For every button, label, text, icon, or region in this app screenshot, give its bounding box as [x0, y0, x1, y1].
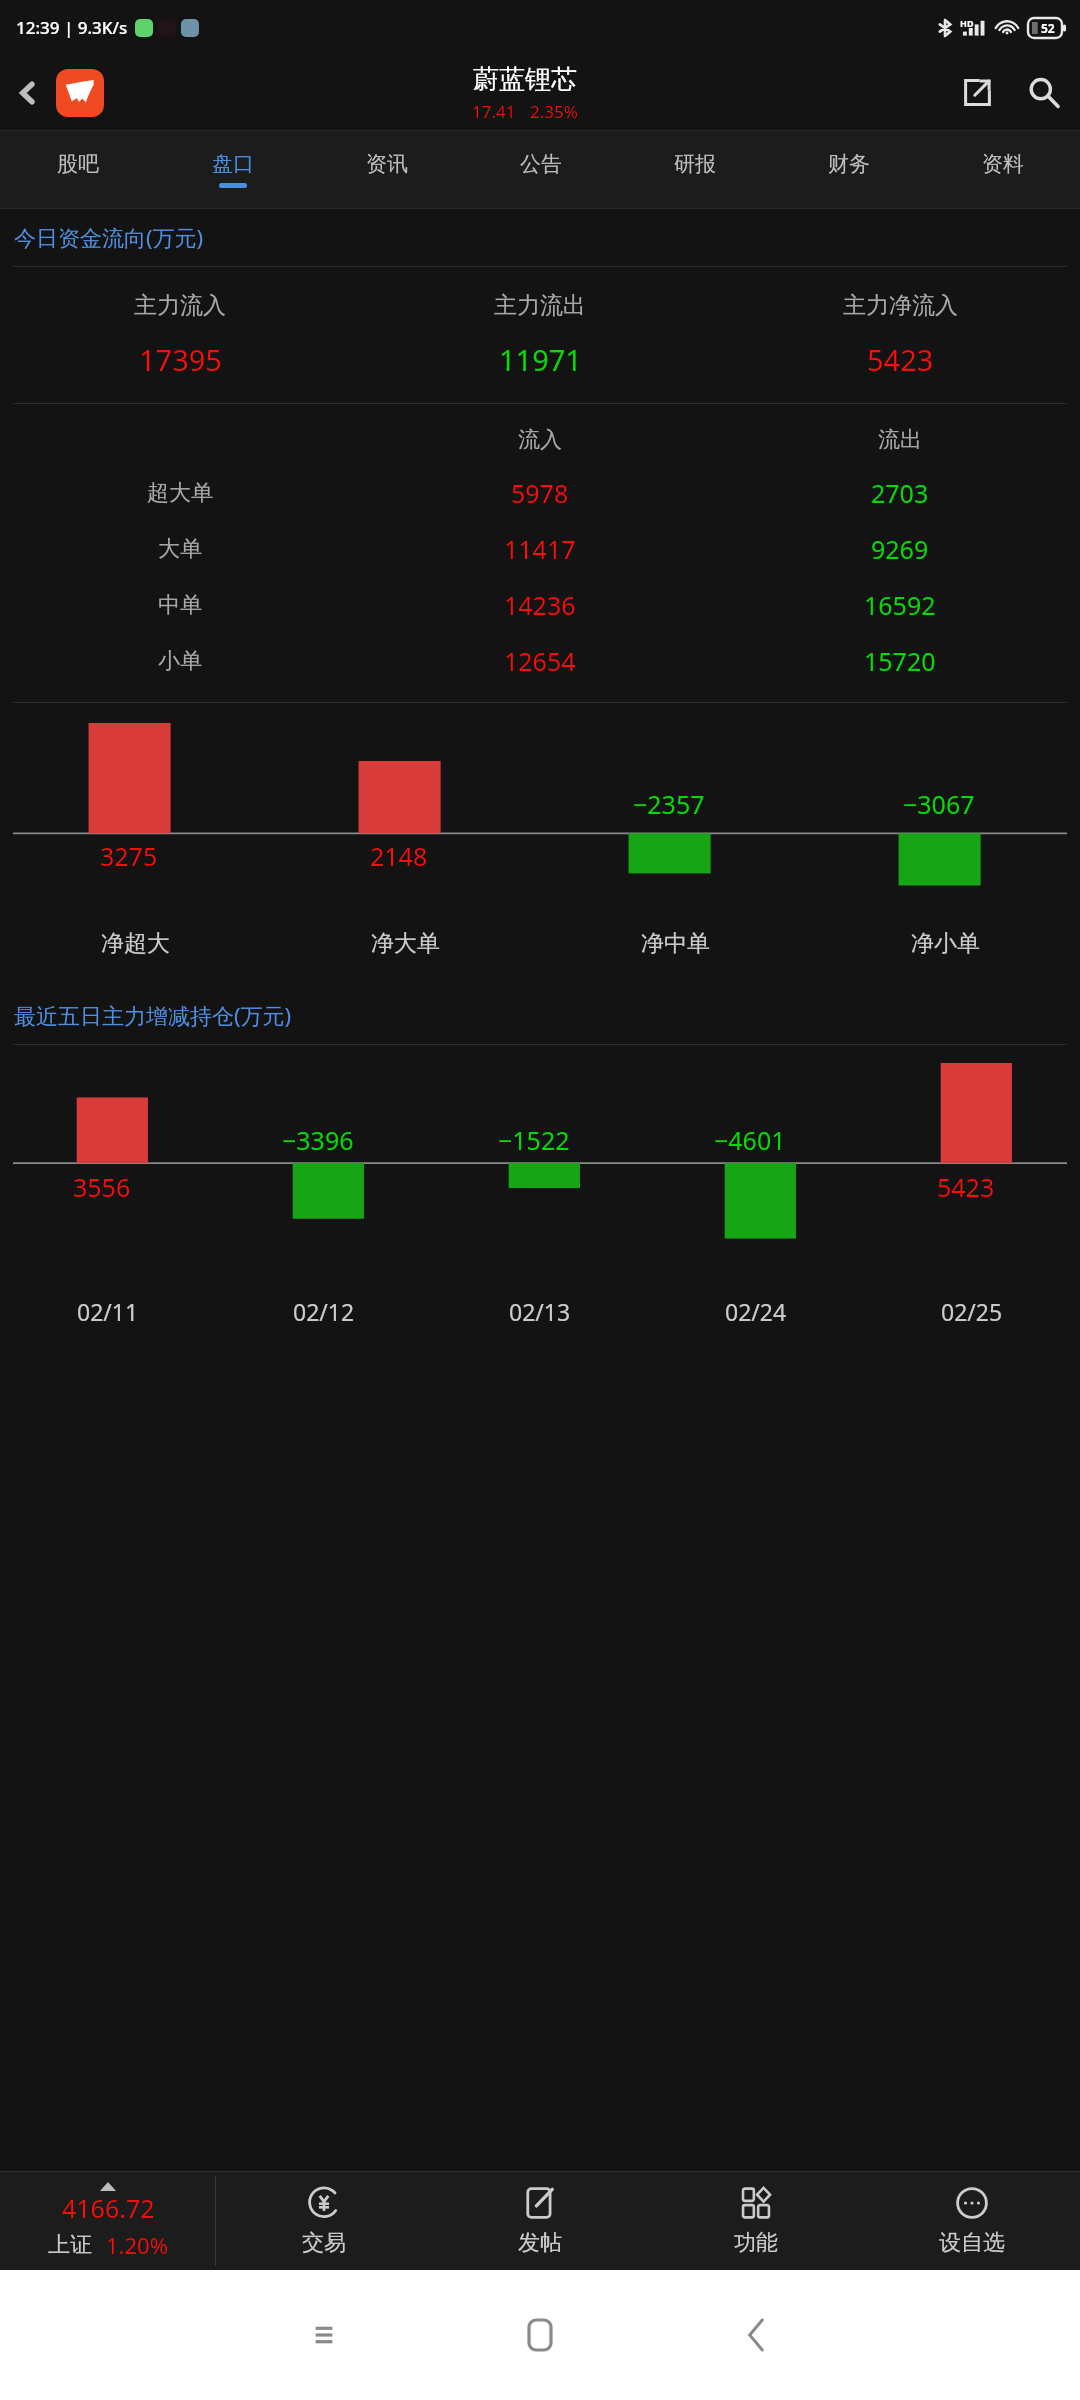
staticText: 9269	[871, 532, 929, 566]
staticText: 最近五日主力增减持仓(万元)	[14, 1000, 292, 1030]
button[interactable]: Share	[946, 55, 1008, 130]
staticText: −3067	[903, 787, 975, 821]
staticText: 02/11	[77, 1296, 139, 1327]
button[interactable]: 公告	[464, 131, 618, 208]
button[interactable]: 财务	[772, 131, 926, 208]
staticText: −1522	[498, 1123, 570, 1157]
button[interactable]: 发帖	[432, 2172, 648, 2270]
staticText: 16592	[864, 588, 936, 622]
staticText: 净大单	[371, 929, 440, 958]
button[interactable]: 资料	[926, 131, 1080, 208]
staticText: 17395	[139, 340, 222, 379]
button[interactable]: Recents	[216, 2270, 432, 2400]
staticText: 财务	[828, 151, 870, 177]
staticText: −2357	[633, 787, 705, 821]
staticText: 流出	[878, 426, 922, 454]
staticText: 流入	[518, 426, 562, 454]
button[interactable]: 研报	[618, 131, 772, 208]
staticText: 资料	[982, 151, 1024, 177]
staticText: 上证	[48, 2231, 92, 2259]
button[interactable]: Back	[648, 2270, 864, 2400]
staticText: 2.35%	[530, 100, 578, 123]
button[interactable]: Search	[1008, 55, 1080, 130]
staticText: 3275	[100, 839, 158, 873]
staticText: 5978	[511, 476, 569, 510]
staticText: 研报	[674, 151, 716, 177]
staticText: −3396	[282, 1123, 354, 1157]
button[interactable]: Home	[432, 2270, 648, 2400]
staticText: 11417	[504, 532, 576, 566]
staticText: 超大单	[147, 479, 213, 507]
staticText: 股吧	[57, 151, 99, 177]
button[interactable]: App home	[56, 69, 104, 117]
staticText: 5423	[867, 340, 934, 379]
staticText: 3556	[73, 1170, 131, 1204]
staticText: 02/24	[725, 1296, 787, 1327]
button[interactable]: 4166.72	[0, 2172, 215, 2270]
staticText: 5423	[937, 1170, 995, 1204]
staticText: 2703	[871, 476, 929, 510]
staticText: 发帖	[518, 2229, 562, 2257]
staticText: 功能	[734, 2229, 778, 2257]
staticText: 净超大	[101, 929, 170, 958]
staticText: 盘口	[212, 151, 254, 177]
staticText: 15720	[864, 644, 936, 678]
staticText: 小单	[158, 647, 202, 675]
staticText: 蔚蓝锂芯	[473, 63, 577, 96]
button[interactable]: 资讯	[310, 131, 464, 208]
staticText: 02/25	[941, 1296, 1003, 1327]
button[interactable]: 盘口	[155, 131, 310, 208]
staticText: 交易	[302, 2229, 346, 2257]
button[interactable]: 交易	[216, 2172, 432, 2270]
staticText: HD	[960, 17, 974, 29]
staticText: 净小单	[911, 929, 980, 958]
staticText: 2148	[370, 839, 428, 873]
button[interactable]: 股吧	[0, 131, 155, 208]
staticText: 02/12	[293, 1296, 355, 1327]
staticText: 主力净流入	[843, 291, 958, 320]
staticText: 今日资金流向(万元)	[14, 222, 204, 252]
staticText: −4601	[714, 1123, 786, 1157]
staticText: 中单	[158, 591, 202, 619]
staticText: 02/13	[509, 1296, 571, 1327]
button[interactable]: 设自选	[864, 2172, 1080, 2270]
staticText: 资讯	[366, 151, 408, 177]
staticText: 大单	[158, 535, 202, 563]
staticText: 11971	[499, 340, 582, 379]
staticText: 12:39 | 9.3K/s	[16, 16, 128, 39]
button[interactable]: Back	[0, 55, 56, 130]
staticText: 净中单	[641, 929, 710, 958]
staticText: 17.41	[472, 100, 516, 123]
staticText: 14236	[504, 588, 576, 622]
staticText: 设自选	[939, 2229, 1005, 2257]
staticText: 52	[1041, 20, 1055, 36]
staticText: 4166.72	[62, 2191, 155, 2225]
staticText: 公告	[520, 151, 562, 177]
button[interactable]: 功能	[648, 2172, 864, 2270]
staticText: 主力流入	[134, 291, 226, 320]
staticText: 1.20%	[106, 2230, 168, 2260]
staticText: 12654	[504, 644, 576, 678]
staticText: 主力流出	[494, 291, 586, 320]
